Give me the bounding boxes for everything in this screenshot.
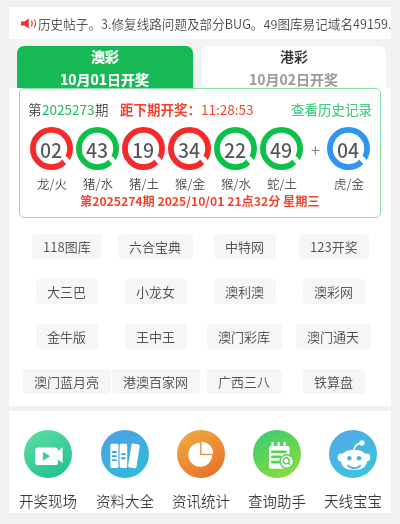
staticText: 118图库 xyxy=(43,237,91,256)
other: Announcement xyxy=(21,17,34,30)
staticText: 19 xyxy=(132,135,155,163)
button[interactable]: 广西三八 xyxy=(207,369,282,394)
button[interactable]: 天线宝宝 xyxy=(315,411,391,511)
staticText: 澳门蓝月亮 xyxy=(34,372,100,391)
staticText: 澳利澳 xyxy=(225,282,265,301)
button[interactable]: 澳利澳 xyxy=(214,279,276,304)
button[interactable]: 澳门彩库 xyxy=(207,324,282,349)
staticText: 04 xyxy=(337,135,360,163)
staticText: 2025273 xyxy=(42,99,95,119)
staticText: 中特网 xyxy=(225,237,265,256)
staticText: 43 xyxy=(86,135,109,163)
staticText: 猴/金 xyxy=(175,174,205,192)
button[interactable]: 金牛版 xyxy=(36,324,98,349)
staticText: + xyxy=(311,137,320,160)
staticText: 第 xyxy=(28,99,42,119)
button[interactable]: 资讯统计 xyxy=(163,411,239,511)
staticText: 大三巴 xyxy=(47,282,87,301)
staticText: 龙/火 xyxy=(37,174,67,192)
button[interactable]: 开奖现场 xyxy=(9,411,86,511)
staticText: 34 xyxy=(178,135,201,163)
button[interactable]: 澳门通天 xyxy=(296,324,371,349)
staticText: 第2025274期 2025/10/01 21点32分 星期三 xyxy=(80,192,320,210)
staticText: 王中王 xyxy=(136,327,176,346)
staticText: 猪/水 xyxy=(83,174,113,192)
staticText: 铁算盘 xyxy=(314,372,354,391)
button[interactable]: 六合宝典 xyxy=(118,234,193,259)
staticText: 10月01日开奖 xyxy=(60,69,150,88)
staticText: 蛇/土 xyxy=(267,174,297,192)
staticText: 开奖现场 xyxy=(19,490,77,511)
button[interactable]: 123开奖 xyxy=(299,234,369,259)
other: 查询助手 xyxy=(253,430,301,478)
button[interactable]: 澳彩网 xyxy=(303,279,365,304)
staticText: 资料大全 xyxy=(96,490,154,511)
staticText: 港彩 xyxy=(280,46,308,66)
button[interactable]: 港彩 xyxy=(202,46,386,88)
button[interactable]: 小龙女 xyxy=(125,279,187,304)
staticText: 猪/土 xyxy=(129,174,159,192)
staticText: 期 xyxy=(95,99,109,119)
staticText: 广西三八 xyxy=(218,372,271,391)
staticText: 历史帖子。3.修复线路问题及部分BUG。49图库易记域名49159. xyxy=(38,14,391,32)
button[interactable]: 王中王 xyxy=(125,324,187,349)
button[interactable]: 澳彩 xyxy=(17,46,193,88)
staticText: 虎/金 xyxy=(334,174,364,192)
staticText: 22 xyxy=(224,135,247,163)
staticText: 港澳百家网 xyxy=(123,372,189,391)
button[interactable]: 查询助手 xyxy=(239,411,315,511)
staticText: 49 xyxy=(270,135,293,163)
staticText: 查看历史记录 xyxy=(291,99,372,119)
button[interactable]: 查看历史记录 xyxy=(291,99,372,119)
other: 天线宝宝 xyxy=(329,430,377,478)
staticText: 六合宝典 xyxy=(129,237,182,256)
staticText: 猴/水 xyxy=(221,174,251,192)
other: 开奖现场 xyxy=(24,430,72,478)
button[interactable]: 118图库 xyxy=(32,234,102,259)
other: 资讯统计 xyxy=(177,430,225,478)
staticText: 查询助手 xyxy=(248,490,306,511)
other: 资料大全 xyxy=(101,430,149,478)
button[interactable]: Announcement xyxy=(9,7,391,39)
staticText: 123开奖 xyxy=(310,237,358,256)
staticText: 金牛版 xyxy=(47,327,87,346)
staticText: 澳彩网 xyxy=(314,282,354,301)
button[interactable]: 澳门蓝月亮 xyxy=(23,369,111,394)
staticText: 小龙女 xyxy=(136,282,176,301)
staticText: 10月02日开奖 xyxy=(249,69,339,88)
staticText: 02 xyxy=(40,135,63,163)
staticText: 天线宝宝 xyxy=(324,490,382,511)
staticText: 澳门通天 xyxy=(307,327,360,346)
staticText: 澳门彩库 xyxy=(218,327,271,346)
button[interactable]: 中特网 xyxy=(214,234,276,259)
button[interactable]: 资料大全 xyxy=(86,411,163,511)
staticText: 澳彩 xyxy=(91,46,119,66)
button[interactable]: 港澳百家网 xyxy=(112,369,200,394)
button[interactable]: 铁算盘 xyxy=(303,369,365,394)
staticText: 距下期开奖： xyxy=(120,99,201,119)
staticText: 资讯统计 xyxy=(172,490,230,511)
staticText: 11:28:53 xyxy=(201,99,254,119)
button[interactable]: 大三巴 xyxy=(36,279,98,304)
